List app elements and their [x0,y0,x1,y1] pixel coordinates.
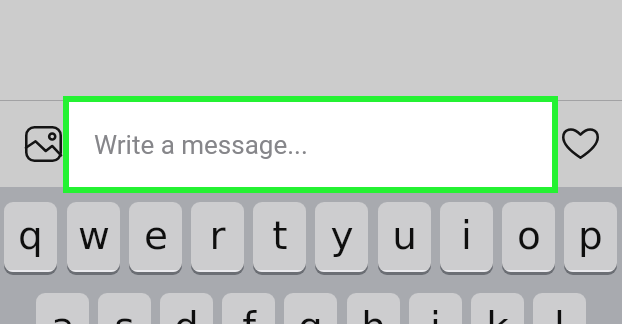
staticText: q [18,213,43,258]
button[interactable]: q [4,202,57,275]
button[interactable]: p [564,202,617,275]
staticText: j [430,304,441,324]
staticText: w [78,213,110,258]
staticText: h [361,304,386,324]
button[interactable]: u [378,202,431,275]
staticText: o [517,213,541,258]
button[interactable]: Write a message... [69,102,552,187]
staticText: d [174,304,199,324]
button[interactable]: y [315,202,368,275]
button[interactable]: t [253,202,306,275]
button[interactable]: r [191,202,244,275]
button[interactable]: Like [558,112,622,176]
button[interactable]: a [36,293,89,324]
button[interactable]: j [409,293,462,324]
staticText: k [486,304,509,324]
staticText: e [144,213,168,258]
button[interactable]: h [347,293,400,324]
staticText: r [209,213,226,258]
staticText: f [242,304,256,324]
staticText: l [554,304,565,324]
staticText: Write a message... [94,130,308,160]
button[interactable]: Attach photo [10,112,76,176]
staticText: g [298,304,323,324]
button[interactable]: f [222,293,275,324]
staticText: i [461,213,472,258]
staticText: s [114,304,135,324]
staticText: t [272,213,288,258]
staticText: y [330,213,354,258]
button[interactable]: e [129,202,182,275]
staticText: a [51,304,75,324]
button[interactable]: s [98,293,151,324]
button[interactable]: o [502,202,555,275]
button[interactable]: w [67,202,120,275]
button[interactable]: i [440,202,493,275]
staticText: p [578,213,603,258]
button[interactable]: k [471,293,524,324]
button[interactable]: d [160,293,213,324]
button[interactable]: l [533,293,586,324]
button[interactable]: g [284,293,337,324]
staticText: u [392,213,417,258]
